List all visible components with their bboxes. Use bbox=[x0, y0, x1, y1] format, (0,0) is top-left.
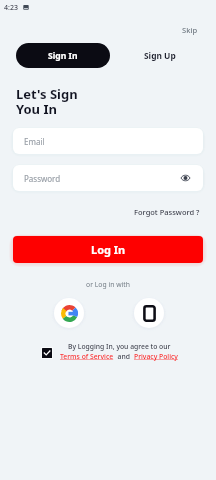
staticText: Skip bbox=[182, 25, 198, 35]
staticText: Email bbox=[24, 136, 45, 147]
staticText: Let's Sign You In bbox=[16, 85, 78, 118]
staticText: and bbox=[114, 352, 134, 361]
button[interactable]: Terms of Service bbox=[60, 352, 114, 361]
button[interactable]: Sign in with phone bbox=[134, 298, 164, 328]
staticText: Password bbox=[24, 173, 61, 184]
button[interactable]: Sign In bbox=[16, 43, 110, 68]
button[interactable]: Sign in with Google bbox=[54, 298, 84, 328]
button[interactable]: Forgot Password ? bbox=[132, 205, 202, 219]
staticText: 4:23 bbox=[4, 3, 18, 13]
button[interactable]: Sign Up bbox=[133, 43, 187, 68]
staticText: By Logging In, you agree to our bbox=[68, 342, 171, 351]
button[interactable]: Log In bbox=[13, 236, 203, 263]
staticText: or Log in with bbox=[0, 280, 216, 289]
staticText: Forgot Password ? bbox=[134, 207, 200, 217]
button[interactable]: Skip bbox=[180, 23, 200, 37]
button[interactable]: Privacy Policy bbox=[134, 352, 178, 361]
staticText: Sign Up bbox=[144, 50, 176, 61]
staticText: Log In bbox=[91, 242, 126, 257]
button[interactable]: Show password bbox=[178, 171, 192, 185]
button[interactable]: Password bbox=[13, 165, 203, 191]
staticText: Sign In bbox=[48, 50, 78, 62]
button[interactable]: Accept terms and conditions bbox=[42, 348, 52, 358]
button[interactable]: Email bbox=[13, 128, 203, 154]
